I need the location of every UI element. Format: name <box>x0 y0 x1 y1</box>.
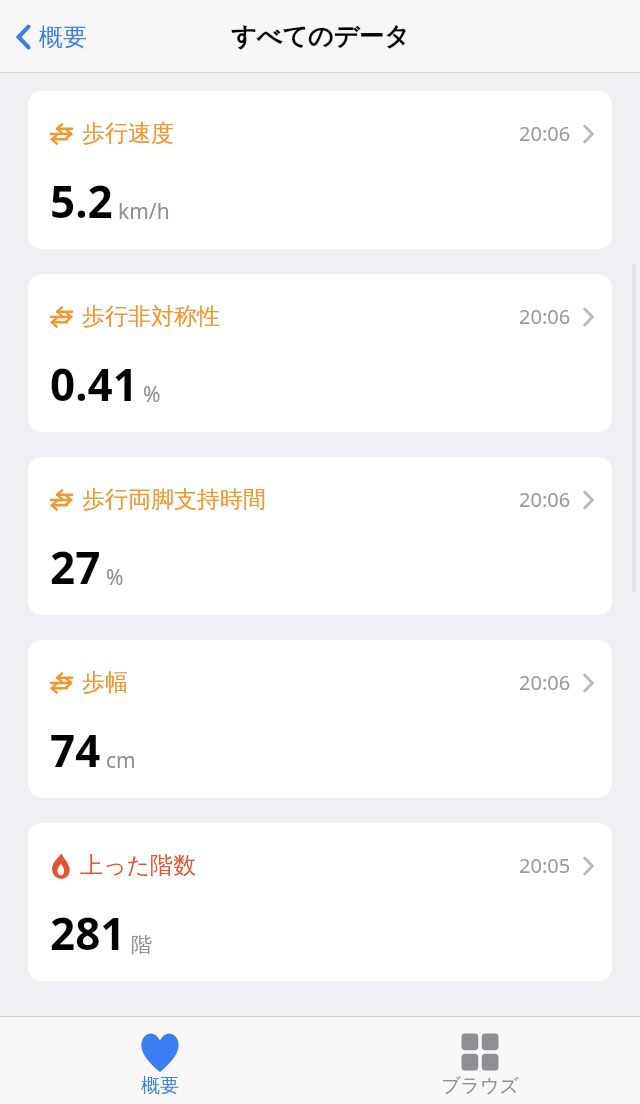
other: Walking metric <box>50 123 74 145</box>
staticText: cm <box>106 746 136 775</box>
staticText: 概要 <box>39 22 87 52</box>
other: Walking metric <box>50 672 74 694</box>
staticText: 歩行両脚支持時間 <box>82 485 266 514</box>
button[interactable]: Walking metric <box>28 274 612 432</box>
staticText: % <box>143 380 161 409</box>
other: Walking metric <box>50 489 74 511</box>
staticText: 20:06 <box>519 120 571 147</box>
staticText: 上った階数 <box>80 851 197 880</box>
staticText: % <box>106 563 124 592</box>
other: Walking metric <box>50 306 74 328</box>
staticText: ブラウズ <box>441 1074 519 1098</box>
staticText: 0.41 <box>50 354 138 414</box>
staticText: km/h <box>118 197 170 226</box>
staticText: 20:06 <box>519 669 571 696</box>
staticText: 20:05 <box>519 852 571 879</box>
button[interactable]: Flights climbed <box>28 823 612 981</box>
staticText: 5.2 <box>50 171 113 231</box>
other: Flights climbed <box>50 853 72 879</box>
button[interactable]: ブラウズ <box>320 1017 640 1104</box>
button[interactable]: Walking metric <box>28 640 612 798</box>
staticText: 歩行非対称性 <box>82 302 220 331</box>
staticText: 27 <box>50 537 101 597</box>
staticText: 階 <box>131 932 152 958</box>
button[interactable]: Walking metric <box>28 91 612 249</box>
staticText: 歩幅 <box>82 668 128 697</box>
button[interactable]: 概要 <box>0 1017 320 1104</box>
staticText: 74 <box>50 720 101 780</box>
button[interactable]: 概要 <box>10 16 93 58</box>
staticText: 歩行速度 <box>82 119 174 148</box>
staticText: すべてのデータ <box>231 21 410 52</box>
staticText: 概要 <box>141 1074 179 1098</box>
staticText: 281 <box>50 903 126 963</box>
staticText: 20:06 <box>519 303 571 330</box>
button[interactable]: Walking metric <box>28 457 612 615</box>
staticText: 20:06 <box>519 486 571 513</box>
